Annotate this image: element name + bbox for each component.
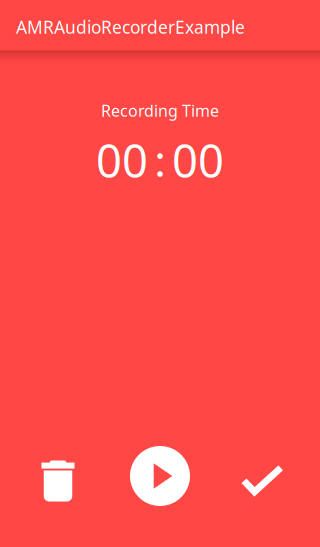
staticText: Recording Time [101, 100, 219, 121]
staticText: AMRAudioRecorderExample [16, 15, 245, 38]
button[interactable]: Delete recording [22, 440, 94, 512]
staticText: 00 [172, 130, 224, 190]
staticText: 00 [96, 130, 148, 190]
button[interactable]: Save recording [226, 440, 298, 512]
button[interactable]: Play [124, 440, 196, 512]
